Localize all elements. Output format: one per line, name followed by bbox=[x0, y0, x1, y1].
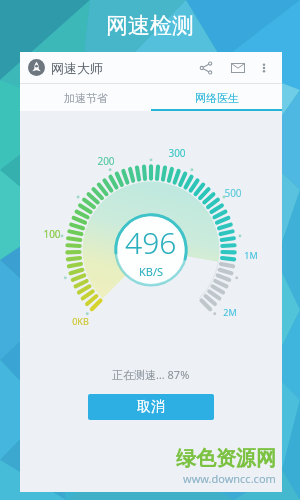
staticText: 500 bbox=[224, 186, 242, 200]
staticText: 300 bbox=[168, 146, 186, 160]
button[interactable]: 网络医生 bbox=[151, 84, 282, 111]
staticText: www.downcc.com bbox=[183, 471, 276, 486]
staticText: 0KB bbox=[72, 315, 89, 327]
staticText: 100 bbox=[43, 227, 61, 241]
staticText: 网络医生 bbox=[195, 91, 239, 105]
staticText: KB/S bbox=[139, 264, 164, 279]
button[interactable]: Mail bbox=[225, 55, 251, 81]
staticText: 绿色资源网 bbox=[176, 446, 276, 471]
button[interactable]: More options bbox=[253, 57, 275, 79]
button[interactable]: Share bbox=[193, 55, 219, 81]
staticText: 取消 bbox=[137, 398, 165, 416]
staticText: 2M bbox=[223, 306, 237, 318]
button[interactable]: 取消 bbox=[88, 394, 214, 420]
staticText: 网速检测 bbox=[106, 12, 194, 40]
button[interactable]: 加速节省 bbox=[20, 84, 151, 111]
button[interactable]: 网速大师 bbox=[28, 59, 103, 76]
staticText: 496 bbox=[125, 222, 177, 263]
staticText: 正在测速… 87% bbox=[112, 367, 190, 382]
staticText: 200 bbox=[97, 154, 115, 168]
staticText: 1M bbox=[244, 249, 258, 261]
staticText: 加速节省 bbox=[64, 91, 108, 105]
staticText: 网速大师 bbox=[51, 60, 103, 76]
